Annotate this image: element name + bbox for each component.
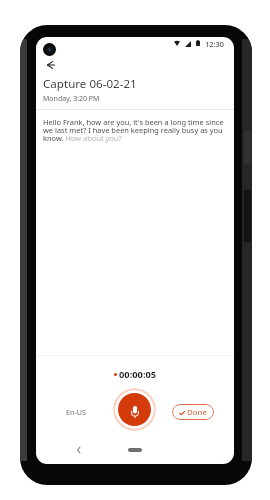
button[interactable]: En-US bbox=[66, 407, 86, 417]
staticText: Monday, 3:20 PM bbox=[43, 94, 100, 104]
staticText: 12:30 bbox=[205, 39, 224, 49]
staticText: 00:00:05 bbox=[119, 368, 157, 381]
staticText: En-US bbox=[66, 407, 86, 417]
button[interactable]: Back bbox=[40, 57, 62, 73]
staticText: Done bbox=[187, 407, 207, 418]
button[interactable]: Back bbox=[71, 443, 85, 457]
staticText: Capture 06-02-21 bbox=[43, 76, 137, 92]
staticText: Hello Frank, how are you, it's been a lo… bbox=[43, 117, 228, 143]
button[interactable]: Done bbox=[172, 404, 214, 420]
button[interactable]: Record bbox=[113, 388, 156, 431]
